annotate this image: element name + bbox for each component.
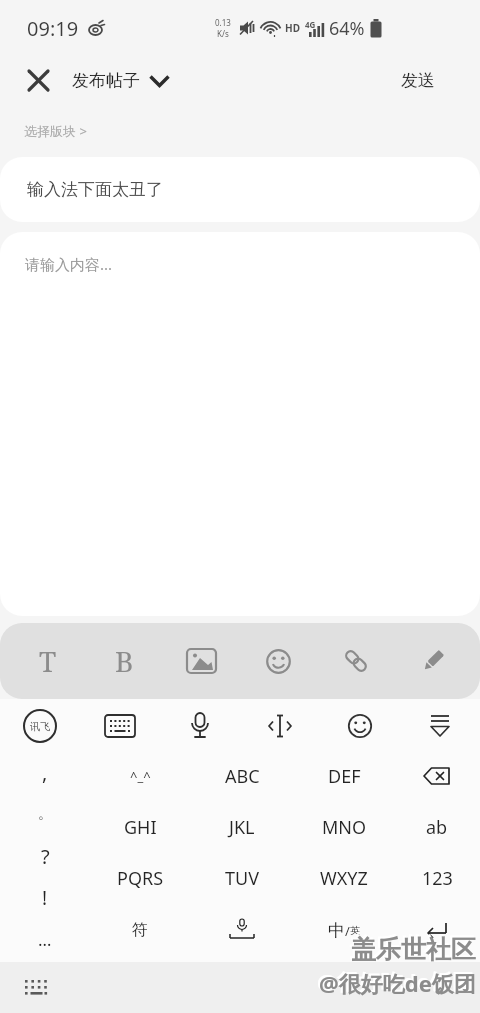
button[interactable]: TUV xyxy=(196,854,288,902)
button[interactable]: 发布帖子 xyxy=(72,70,170,91)
button[interactable] xyxy=(16,968,60,1008)
button[interactable]: 123 xyxy=(391,854,480,902)
button[interactable] xyxy=(80,699,160,753)
staticText: , xyxy=(42,759,48,786)
button[interactable]: 选择版块 > xyxy=(0,104,480,157)
staticText: WXYZ xyxy=(320,866,368,891)
button[interactable] xyxy=(400,699,480,753)
staticText: 发送 xyxy=(401,70,435,91)
staticText: MNO xyxy=(322,815,367,840)
button[interactable]: 。 xyxy=(0,790,91,838)
staticText: ? xyxy=(41,843,50,870)
button[interactable]: T xyxy=(9,623,86,699)
staticText: HD xyxy=(285,21,300,35)
button[interactable]: ! xyxy=(0,874,91,922)
staticText: TUV xyxy=(225,866,259,891)
button[interactable]: 发送 xyxy=(393,62,443,99)
staticText: / xyxy=(345,922,350,940)
button[interactable]: WXYZ xyxy=(298,854,390,902)
button[interactable] xyxy=(391,752,480,800)
button[interactable] xyxy=(317,623,394,699)
staticText: 64% xyxy=(329,16,365,41)
button[interactable]: DEF xyxy=(298,752,390,800)
staticText: 4G xyxy=(305,19,316,30)
button[interactable] xyxy=(320,699,400,753)
staticText: 盖乐世社区 xyxy=(349,932,474,963)
staticText: B xyxy=(115,642,134,680)
staticText: @很好吃de饭团 xyxy=(319,968,476,998)
button[interactable]: GHI xyxy=(94,803,186,851)
button[interactable] xyxy=(15,57,61,103)
staticText: 输入法下面太丑了 xyxy=(27,179,163,200)
button[interactable] xyxy=(163,623,240,699)
staticText: 讯飞 xyxy=(30,720,50,733)
staticText: 123 xyxy=(422,866,453,891)
button[interactable] xyxy=(240,623,317,699)
staticText: ! xyxy=(42,885,48,911)
staticText: @很好吃de饭团 xyxy=(317,966,474,996)
staticText: T xyxy=(39,642,57,680)
button[interactable]: 请输入内容... xyxy=(0,232,480,616)
button[interactable]: 符 xyxy=(94,906,186,954)
staticText: 。 xyxy=(38,805,52,823)
button[interactable]: ABC xyxy=(196,752,288,800)
button[interactable]: 输入法下面太丑了 xyxy=(0,157,480,222)
staticText: 选择版块 > xyxy=(24,122,87,140)
staticText: ab xyxy=(426,815,448,840)
staticText: DEF xyxy=(328,764,361,789)
button[interactable] xyxy=(394,623,471,699)
button[interactable]: ? xyxy=(0,832,91,880)
staticText: 0.13 xyxy=(215,17,231,28)
staticText: 英 xyxy=(350,924,360,937)
staticText: 中 xyxy=(328,920,345,941)
button[interactable] xyxy=(391,906,480,954)
button[interactable] xyxy=(196,906,288,954)
staticText: 发布帖子 xyxy=(72,70,140,91)
button[interactable]: MNO xyxy=(298,803,390,851)
button[interactable]: , xyxy=(0,748,91,796)
button[interactable] xyxy=(240,699,320,753)
staticText: 符 xyxy=(132,920,148,940)
button[interactable]: 中 xyxy=(298,906,390,954)
button[interactable]: PQRS xyxy=(94,854,186,902)
staticText: ABC xyxy=(225,764,260,789)
staticText: 09:19 xyxy=(27,15,79,42)
button[interactable]: ab xyxy=(391,803,480,851)
button[interactable]: JKL xyxy=(196,803,288,851)
button[interactable]: … xyxy=(0,915,91,963)
staticText: PQRS xyxy=(117,866,164,891)
button[interactable]: B xyxy=(86,623,163,699)
staticText: 盖乐世社区 xyxy=(351,934,476,965)
button[interactable] xyxy=(160,699,240,753)
staticText: JKL xyxy=(229,815,255,840)
staticText: K/s xyxy=(217,28,229,39)
button[interactable]: ^_^ xyxy=(94,752,186,800)
button[interactable]: 讯飞 xyxy=(0,699,80,753)
staticText: GHI xyxy=(124,815,157,840)
staticText: … xyxy=(38,928,52,951)
staticText: 请输入内容... xyxy=(25,254,113,274)
staticText: ^_^ xyxy=(130,767,151,785)
